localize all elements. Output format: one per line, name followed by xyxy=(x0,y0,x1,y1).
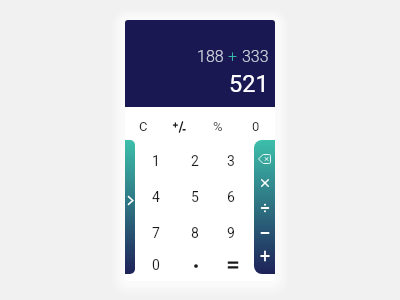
staticText: 333 xyxy=(238,47,269,66)
staticText: 5 xyxy=(191,189,199,205)
button[interactable]: 0 xyxy=(237,107,275,145)
staticText: 521 xyxy=(229,70,269,98)
staticText: 2 xyxy=(191,153,199,169)
staticText: 6 xyxy=(227,189,235,205)
staticText: 1 xyxy=(152,153,160,169)
button[interactable]: Equals xyxy=(214,248,248,281)
button[interactable]: 5 xyxy=(178,180,212,214)
button[interactable]: 7 xyxy=(139,216,173,250)
button[interactable]: C xyxy=(125,107,162,145)
staticText: 9 xyxy=(227,225,235,241)
button[interactable]: % xyxy=(199,107,237,145)
button[interactable]: Subtract xyxy=(254,221,275,245)
button[interactable]: 2 xyxy=(178,144,212,178)
button[interactable]: Add xyxy=(254,244,275,268)
button[interactable] xyxy=(178,248,212,281)
button[interactable]: 4 xyxy=(139,180,173,214)
staticText: 3 xyxy=(227,153,235,169)
button[interactable]: 9 xyxy=(214,216,248,250)
button[interactable]: 6 xyxy=(214,180,248,214)
staticText: 8 xyxy=(191,225,199,241)
staticText: 4 xyxy=(152,189,160,205)
button[interactable]: Divide xyxy=(254,196,275,220)
button[interactable]: Expand panel xyxy=(125,140,135,274)
button[interactable]: Multiply xyxy=(254,171,275,195)
staticText: + xyxy=(228,47,238,66)
button[interactable]: 1 xyxy=(139,144,173,178)
button[interactable]: 3 xyxy=(214,144,248,178)
staticText: C xyxy=(139,119,148,134)
staticText: 0 xyxy=(252,119,260,134)
staticText: 7 xyxy=(152,225,160,241)
button[interactable]: 0 xyxy=(139,248,173,281)
staticText: 0 xyxy=(152,257,160,273)
button[interactable]: 8 xyxy=(178,216,212,250)
button[interactable]: Plus minus xyxy=(162,107,199,145)
staticText: 188 xyxy=(197,47,228,66)
button[interactable]: Backspace xyxy=(254,147,275,171)
staticText: % xyxy=(213,119,223,134)
